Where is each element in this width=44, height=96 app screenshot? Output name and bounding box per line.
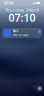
staticText: 07:10 [8,10,35,25]
staticText: New message [13,33,30,37]
staticText: 07:10 [4,0,13,6]
staticText: Mail [13,29,19,33]
staticText: Thursday, 3 April [5,7,39,13]
button[interactable]: Mail [2,28,42,38]
